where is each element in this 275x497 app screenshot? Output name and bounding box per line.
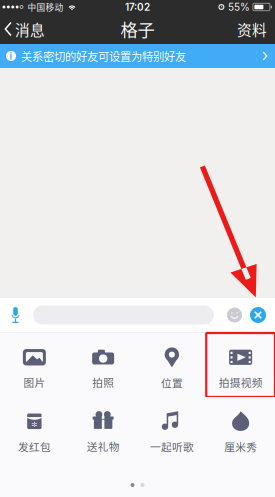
button[interactable]: 送礼物 [69, 397, 138, 461]
staticText: 拍照 [92, 374, 114, 390]
staticText: 一起听歌 [150, 439, 194, 454]
staticText: 格子 [120, 16, 154, 42]
staticText: 发红包 [18, 439, 51, 454]
staticText: 位置 [161, 375, 183, 390]
button[interactable]: Close panel [248, 297, 268, 332]
staticText: 送礼物 [87, 438, 120, 454]
button[interactable]: 消息 [0, 14, 53, 44]
button[interactable]: 图片 [0, 333, 69, 397]
staticText: 55% [228, 1, 250, 13]
staticText: 资料 [237, 18, 267, 40]
staticText: 中国移动 [27, 1, 63, 13]
button[interactable]: 拍摄视频 [206, 333, 275, 397]
staticText: 消息 [15, 18, 45, 40]
staticText: 图片 [23, 374, 45, 390]
staticText: i [9, 50, 12, 62]
staticText: 17:02 [125, 1, 150, 13]
button[interactable]: Emoji [225, 297, 244, 332]
button[interactable]: 拍照 [69, 333, 138, 397]
button[interactable]: 一起听歌 [137, 397, 206, 461]
button[interactable]: 资料 [229, 14, 275, 44]
button[interactable]: i [0, 44, 275, 68]
staticText: 拍摄视频 [219, 374, 263, 390]
button[interactable]: Voice message [0, 297, 33, 332]
staticText: 关系密切的好友可设置为特别好友 [21, 48, 186, 64]
button[interactable]: 发红包 [0, 397, 69, 461]
button[interactable]: 位置 [137, 333, 206, 397]
staticText: 厘米秀 [224, 439, 257, 454]
button[interactable]: 厘米秀 [206, 397, 275, 461]
